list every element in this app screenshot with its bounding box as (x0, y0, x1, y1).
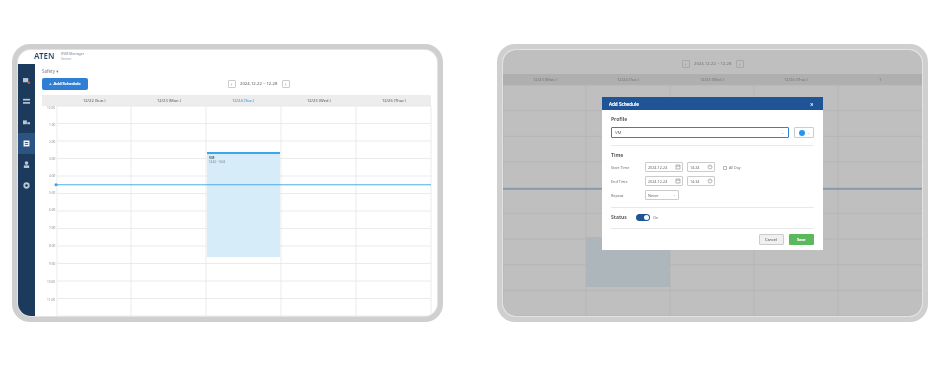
staticText: Add Schedule (609, 101, 639, 107)
button[interactable]: + Add Schedule (42, 78, 88, 90)
staticText: 12/26 (Thur.) (382, 98, 406, 103)
button[interactable]: Previous week (682, 60, 690, 68)
button[interactable]: 14:24 (687, 162, 715, 172)
button[interactable]: Next week (736, 60, 744, 68)
staticText: ‹ (685, 61, 687, 67)
staticText: 1:00 (49, 123, 56, 127)
staticText: 12/24 (Tue.) (617, 77, 640, 82)
staticText: Profile (611, 116, 628, 123)
staticText: 2024-12-22 ~ 12-28 (694, 61, 732, 67)
staticText: On (653, 215, 659, 220)
staticText: Time (611, 152, 624, 159)
staticText: 12/25 (Wed.) (700, 77, 724, 82)
staticText: 9:00 (49, 262, 56, 266)
staticText: 12/23 (Mon.) (533, 77, 557, 82)
staticText: 2024-12-24 (648, 165, 668, 170)
button[interactable]: Menu item 5 (18, 175, 35, 196)
button[interactable]: Menu item 4 (18, 154, 35, 175)
staticText: Status (611, 214, 627, 221)
staticText: 10:00 (47, 280, 56, 284)
button[interactable]: Previous week (228, 80, 236, 88)
staticText: 1 (879, 77, 882, 82)
button[interactable]: Status toggle On (636, 214, 650, 221)
staticText: ⌄ (673, 193, 676, 197)
button[interactable]: 2024-12-24 (645, 162, 683, 172)
staticText: ⌄ (807, 131, 810, 135)
staticText: VM (615, 130, 622, 136)
staticText: 12/23 (Mon.) (157, 98, 181, 103)
staticText: ⌄ (781, 131, 785, 135)
button[interactable]: 14:34 (687, 176, 715, 186)
staticText: 2024-12-24 (648, 179, 668, 184)
button[interactable]: 2024-12-24 (645, 176, 683, 186)
staticText: Server (61, 56, 72, 61)
staticText: + Add Schedule (49, 81, 81, 87)
staticText: 12:00 (47, 106, 56, 110)
staticText: 6:00 (49, 208, 56, 212)
staticText: › (285, 81, 287, 87)
button[interactable]: Menu item 1 (18, 91, 35, 112)
button[interactable]: Menu item 2 (18, 112, 35, 133)
staticText: 12/26 (Thur.) (784, 77, 808, 82)
staticText: 5:00 (49, 191, 56, 195)
staticText: ‹ (231, 81, 233, 87)
staticText: 7:00 (49, 226, 56, 230)
button[interactable]: VM (207, 152, 280, 257)
button[interactable]: Menu item 0 (18, 70, 35, 91)
staticText: 14:34 (690, 179, 700, 184)
staticText: End Time (611, 179, 628, 184)
button[interactable]: Colour picker (794, 127, 814, 138)
staticText: 14:24 ~ 14:34 (209, 160, 226, 164)
staticText: 12/25 (Wed.) (307, 98, 331, 103)
staticText: 4:00 (49, 174, 56, 178)
staticText: 12/22 (Sun.) (83, 98, 106, 103)
staticText: ✕ (810, 102, 814, 107)
button[interactable]: Never (645, 190, 679, 200)
staticText: 11:00 (47, 298, 56, 302)
button[interactable]: Close (808, 100, 816, 108)
button[interactable]: All Day (723, 165, 741, 170)
staticText: 3:00 (49, 157, 56, 161)
staticText: Save (797, 237, 806, 242)
button[interactable]: Menu item 3 (18, 133, 35, 154)
staticText: 2024-12-22 ~ 12-28 (240, 81, 278, 87)
staticText: All Day (729, 165, 741, 170)
staticText: 2:00 (49, 140, 56, 144)
staticText: Repeat (611, 193, 624, 198)
staticText: Safety ▾ (42, 68, 59, 74)
staticText: Cancel (765, 237, 778, 242)
staticText: 14:24 (690, 165, 700, 170)
staticText: Start Time (611, 165, 630, 170)
button[interactable]: Cancel (759, 234, 784, 245)
button[interactable]: VM (611, 127, 789, 138)
button[interactable]: Save (789, 234, 814, 245)
staticText: Never (648, 193, 659, 198)
staticText: 8:00 (49, 244, 56, 248)
staticText: VM (209, 155, 215, 160)
staticText: › (739, 61, 741, 67)
staticText: 12/24 (Tue.) (232, 98, 255, 103)
staticText: KVM Manager (61, 51, 85, 56)
staticText: ATEN (34, 50, 55, 61)
button[interactable]: Next week (282, 80, 290, 88)
